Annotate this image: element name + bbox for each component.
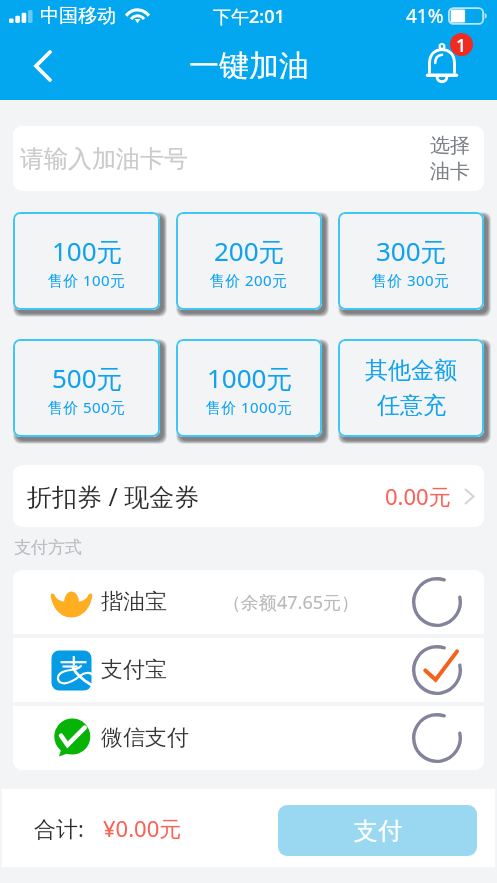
staticText: 中国移动	[40, 4, 116, 28]
staticText: 0.00元	[385, 481, 451, 511]
button[interactable]: 500元	[13, 339, 160, 437]
button[interactable]: 折扣券 / 现金券	[13, 465, 484, 527]
staticText: 其他金额	[365, 356, 457, 385]
button[interactable]: 300元	[338, 212, 484, 310]
staticText: 揩油宝	[101, 588, 167, 616]
staticText: （余额47.65元）	[223, 590, 360, 615]
staticText: 油卡	[430, 159, 470, 184]
button[interactable]: 支付	[278, 805, 477, 856]
button[interactable]: Notifications	[418, 38, 476, 96]
button[interactable]: 选择	[430, 133, 470, 184]
button[interactable]: Back	[12, 32, 62, 100]
button[interactable]: 请输入加油卡号	[13, 126, 484, 191]
staticText: 售价 1000元	[206, 397, 293, 417]
staticText: 500元	[52, 360, 123, 396]
staticText: 售价 200元	[210, 270, 288, 290]
staticText: 微信支付	[101, 724, 189, 752]
staticText: 售价 300元	[372, 270, 450, 290]
staticText: 售价 500元	[48, 397, 126, 417]
staticText: 200元	[214, 233, 285, 269]
staticText: 售价 100元	[48, 270, 126, 290]
staticText: 支付方式	[14, 537, 82, 558]
staticText: 下午2:01	[213, 4, 285, 29]
staticText: 支付	[354, 816, 402, 846]
staticText: 支付宝	[101, 656, 167, 684]
staticText: ¥0.00元	[103, 813, 182, 843]
staticText: 折扣券 / 现金券	[27, 479, 200, 513]
staticText: 一键加油	[189, 47, 309, 85]
staticText: 41%	[406, 3, 444, 29]
staticText: 合计:	[34, 813, 84, 843]
staticText: 任意充	[377, 391, 446, 420]
button[interactable]: 其他金额	[338, 339, 484, 437]
button[interactable]: 1000元	[176, 339, 322, 437]
button[interactable]: 微信支付	[13, 706, 484, 770]
button[interactable]: 支付宝	[13, 638, 484, 702]
button[interactable]: 揩油宝	[13, 570, 484, 634]
button[interactable]: 200元	[176, 212, 322, 310]
staticText: 300元	[376, 233, 447, 269]
staticText: 100元	[52, 233, 123, 269]
staticText: 1	[456, 33, 467, 56]
staticText: 选择	[430, 133, 470, 158]
button[interactable]: 100元	[13, 212, 160, 310]
staticText: 请输入加油卡号	[20, 144, 188, 174]
staticText: 1000元	[207, 360, 293, 396]
